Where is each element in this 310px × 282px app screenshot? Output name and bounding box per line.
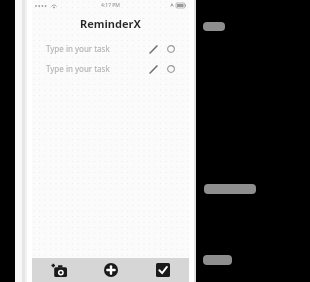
button[interactable]: Done	[137, 258, 189, 282]
button[interactable]: Edit task	[146, 42, 160, 56]
button[interactable]: Mark task complete	[164, 42, 178, 56]
staticText: Type in your task	[46, 63, 110, 74]
staticText: Type in your task	[46, 43, 110, 54]
button[interactable]: Add task	[85, 258, 137, 282]
button[interactable]: Mark task complete	[164, 62, 178, 76]
button[interactable]: Type in your task	[32, 61, 189, 76]
button[interactable]: Add photo	[32, 258, 85, 282]
staticText: ReminderX	[80, 16, 141, 31]
staticText: 4:17 PM	[101, 2, 120, 9]
button[interactable]: Edit task	[146, 62, 160, 76]
button[interactable]: Type in your task	[32, 41, 189, 56]
